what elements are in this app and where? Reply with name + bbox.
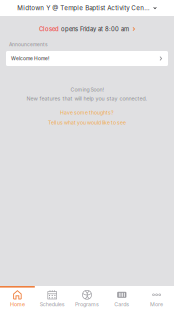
staticText: Home: [10, 301, 25, 308]
button[interactable]: Have some thoughts?: [48, 110, 126, 125]
button[interactable]: Closed: [0, 16, 174, 32]
staticText: Tell us what you would like to see: [48, 119, 126, 126]
button[interactable]: Cards: [104, 286, 139, 310]
button[interactable]: Schedules: [35, 286, 70, 310]
button[interactable]: Programs: [70, 286, 104, 310]
staticText: Schedules: [40, 301, 65, 308]
button[interactable]: Midtown Y @ Temple Baptist Activity Cen…: [0, 0, 174, 16]
staticText: More: [150, 301, 163, 308]
staticText: Have some thoughts?: [60, 109, 114, 116]
staticText: Cards: [114, 301, 129, 308]
staticText: Programs: [75, 301, 99, 308]
staticText: New features that will help you stay con…: [26, 95, 147, 102]
staticText: opens Friday at 8:00 am: [59, 25, 129, 33]
button[interactable]: Home: [0, 286, 35, 310]
button[interactable]: Welcome Home!: [6, 51, 168, 66]
staticText: Welcome Home!: [11, 55, 49, 61]
staticText: Closed: [39, 25, 59, 33]
staticText: Coming Soon!: [70, 86, 103, 93]
button[interactable]: More: [139, 286, 174, 310]
staticText: Midtown Y @ Temple Baptist Activity Cen…: [17, 4, 149, 12]
staticText: Announcements: [9, 41, 48, 47]
